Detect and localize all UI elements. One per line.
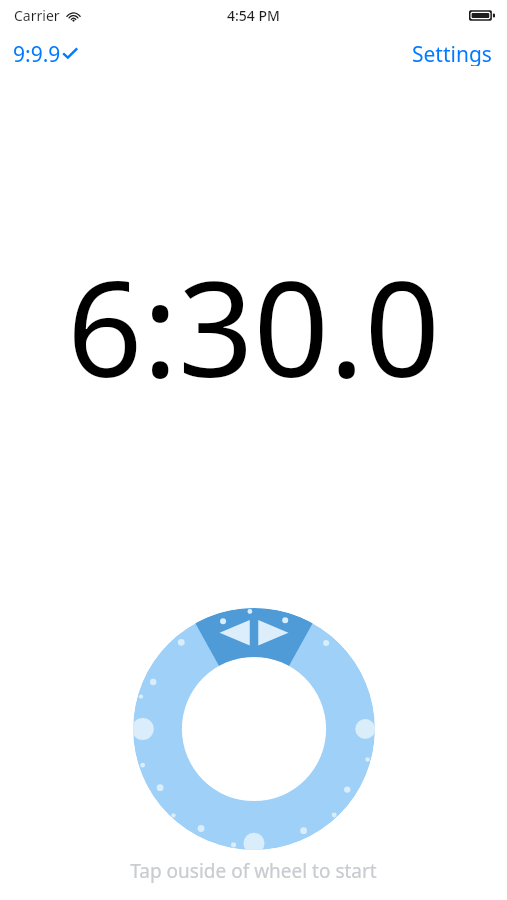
button[interactable]: Adjust timer wheel: [133, 608, 375, 850]
staticText: 4:54 PM: [227, 6, 280, 25]
staticText: 6:30.0: [67, 236, 440, 416]
staticText: 9:9.9: [13, 40, 61, 66]
button[interactable]: 9:9.9: [0, 36, 87, 70]
staticText: Carrier: [14, 6, 60, 25]
button[interactable]: Settings: [397, 36, 507, 70]
staticText: Settings: [412, 40, 492, 66]
staticText: Tap ouside of wheel to start: [130, 858, 377, 884]
